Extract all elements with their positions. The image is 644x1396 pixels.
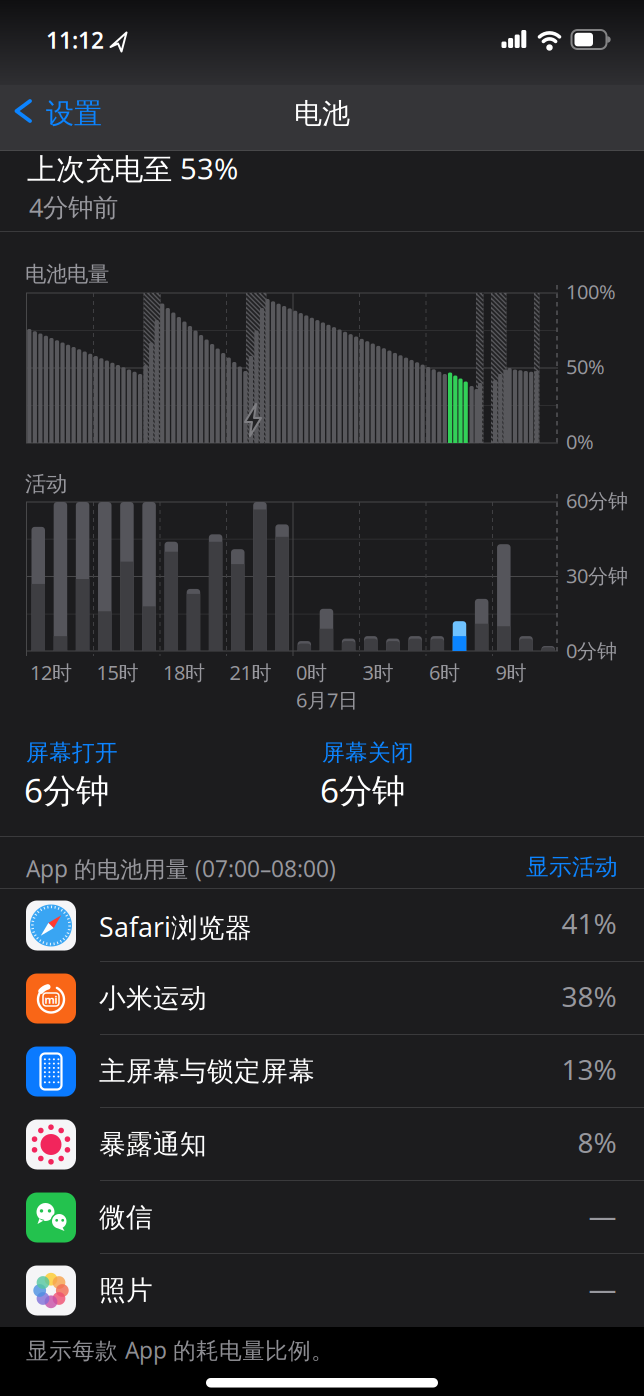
staticText: 21时 — [229, 659, 271, 686]
staticText: Safari浏览器 — [99, 909, 252, 945]
staticText: 6分钟 — [24, 768, 109, 812]
staticText: 6月7日 — [296, 686, 358, 713]
staticText: 9时 — [495, 659, 526, 686]
staticText: 暴露通知 — [99, 1128, 207, 1161]
staticText: 60分钟 — [566, 487, 628, 514]
button[interactable]: 暴露通知 — [0, 1108, 644, 1181]
staticText: 3时 — [362, 659, 393, 686]
staticText: 6分钟 — [320, 768, 405, 812]
button[interactable]: 返回设置 — [0, 96, 116, 142]
staticText: 电池 — [294, 96, 350, 131]
staticText: 0分钟 — [566, 637, 617, 664]
staticText: — — [588, 1270, 616, 1307]
staticText: 13% — [561, 1051, 616, 1088]
staticText: — — [588, 1197, 616, 1234]
button[interactable]: 微信 — [0, 1181, 644, 1254]
staticText: 38% — [561, 978, 616, 1015]
staticText: 12时 — [30, 659, 72, 686]
button[interactable]: Safari浏览器 — [0, 889, 644, 962]
staticText: 4分钟前 — [29, 190, 118, 224]
staticText: mi — [44, 992, 57, 1007]
button[interactable]: mi — [0, 962, 644, 1035]
staticText: 设置 — [46, 96, 102, 131]
staticText: 电池电量 — [25, 261, 109, 287]
button[interactable]: 主屏幕与锁定屏幕 — [0, 1035, 644, 1108]
button[interactable]: 显示活动 — [498, 853, 618, 881]
staticText: 15时 — [96, 659, 138, 686]
staticText: 显示每款 App 的耗电量比例。 — [26, 1335, 334, 1365]
staticText: 8% — [577, 1124, 616, 1161]
staticText: 活动 — [25, 471, 67, 497]
button[interactable]: 照片 — [0, 1254, 644, 1327]
staticText: 屏幕打开 — [26, 739, 118, 766]
staticText: 微信 — [99, 1201, 153, 1234]
staticText: 照片 — [99, 1274, 153, 1307]
staticText: 11:12 — [46, 25, 104, 55]
staticText: 6时 — [429, 659, 460, 686]
staticText: 30分钟 — [566, 562, 628, 589]
staticText: 41% — [561, 905, 616, 942]
staticText: 小米运动 — [99, 982, 207, 1015]
staticText: 屏幕关闭 — [322, 739, 414, 766]
staticText: 18时 — [163, 659, 205, 686]
staticText: App 的电池用量 (07:00–08:00) — [26, 853, 336, 884]
staticText: 100% — [566, 278, 616, 305]
staticText: 0时 — [296, 659, 327, 686]
staticText: 显示活动 — [526, 853, 618, 881]
staticText: 0% — [566, 428, 594, 455]
staticText: 主屏幕与锁定屏幕 — [99, 1055, 315, 1088]
staticText: 50% — [566, 353, 605, 380]
staticText: 上次充电至 53% — [27, 149, 238, 188]
